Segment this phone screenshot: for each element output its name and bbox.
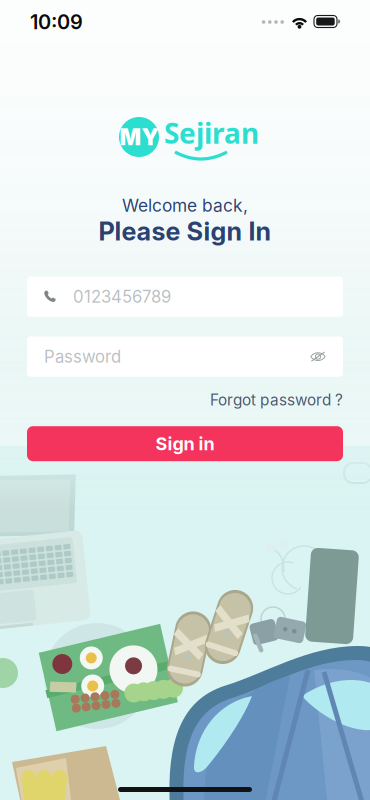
- staticText: MY: [119, 123, 158, 151]
- button[interactable]: Sign in: [0, 426, 370, 461]
- staticText: Sejiran: [164, 114, 259, 152]
- staticText: Welcome back,: [122, 195, 248, 216]
- staticText: Please Sign In: [98, 216, 271, 247]
- staticText: 0123456789: [73, 286, 171, 307]
- button[interactable]: Password: [0, 337, 370, 377]
- button[interactable]: 0123456789: [0, 277, 370, 317]
- staticText: 10:09: [30, 10, 83, 34]
- staticText: Password: [44, 346, 121, 367]
- staticText: Sign in: [155, 433, 214, 455]
- staticText: Forgot password ?: [210, 391, 343, 409]
- button[interactable]: Forgot password ?: [210, 391, 343, 409]
